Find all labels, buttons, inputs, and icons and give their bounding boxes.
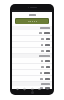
button[interactable] — [12, 76, 52, 82]
staticText: · · · · · — [28, 19, 37, 24]
button[interactable] — [12, 70, 52, 76]
button[interactable] — [12, 30, 52, 36]
button[interactable] — [12, 48, 52, 54]
button[interactable] — [12, 36, 52, 42]
button[interactable] — [12, 58, 52, 64]
button[interactable] — [12, 64, 52, 70]
button[interactable] — [12, 86, 52, 89]
button[interactable]: · · · · · — [15, 18, 49, 24]
button[interactable] — [12, 42, 52, 48]
